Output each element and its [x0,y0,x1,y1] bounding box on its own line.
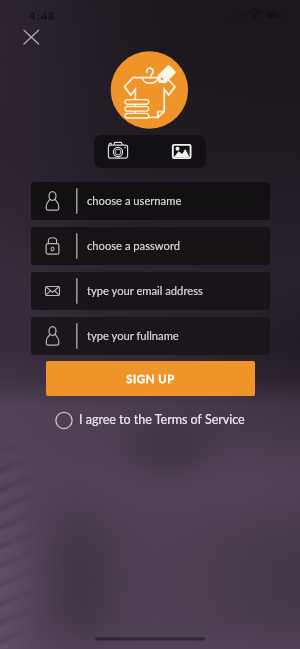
button[interactable]: SIGN UP [46,361,255,396]
button[interactable]: I agree to the Terms of Service [52,406,248,435]
button[interactable]: Close [16,22,47,52]
staticText: type your fullname [87,329,179,342]
button[interactable]: Take photo [94,135,150,168]
button[interactable]: type your fullname [31,317,270,355]
button[interactable]: choose a username [31,182,270,220]
staticText: type your email address [87,284,203,297]
staticText: choose a password [87,239,181,252]
staticText: SIGN UP [126,372,175,386]
button[interactable]: type your email address [31,272,270,310]
staticText: choose a username [87,194,182,207]
staticText: 4:48 [29,8,56,23]
button[interactable]: Choose from gallery [150,135,206,168]
staticText: I agree to the Terms of Service [79,412,245,427]
button[interactable]: choose a password [31,227,270,265]
